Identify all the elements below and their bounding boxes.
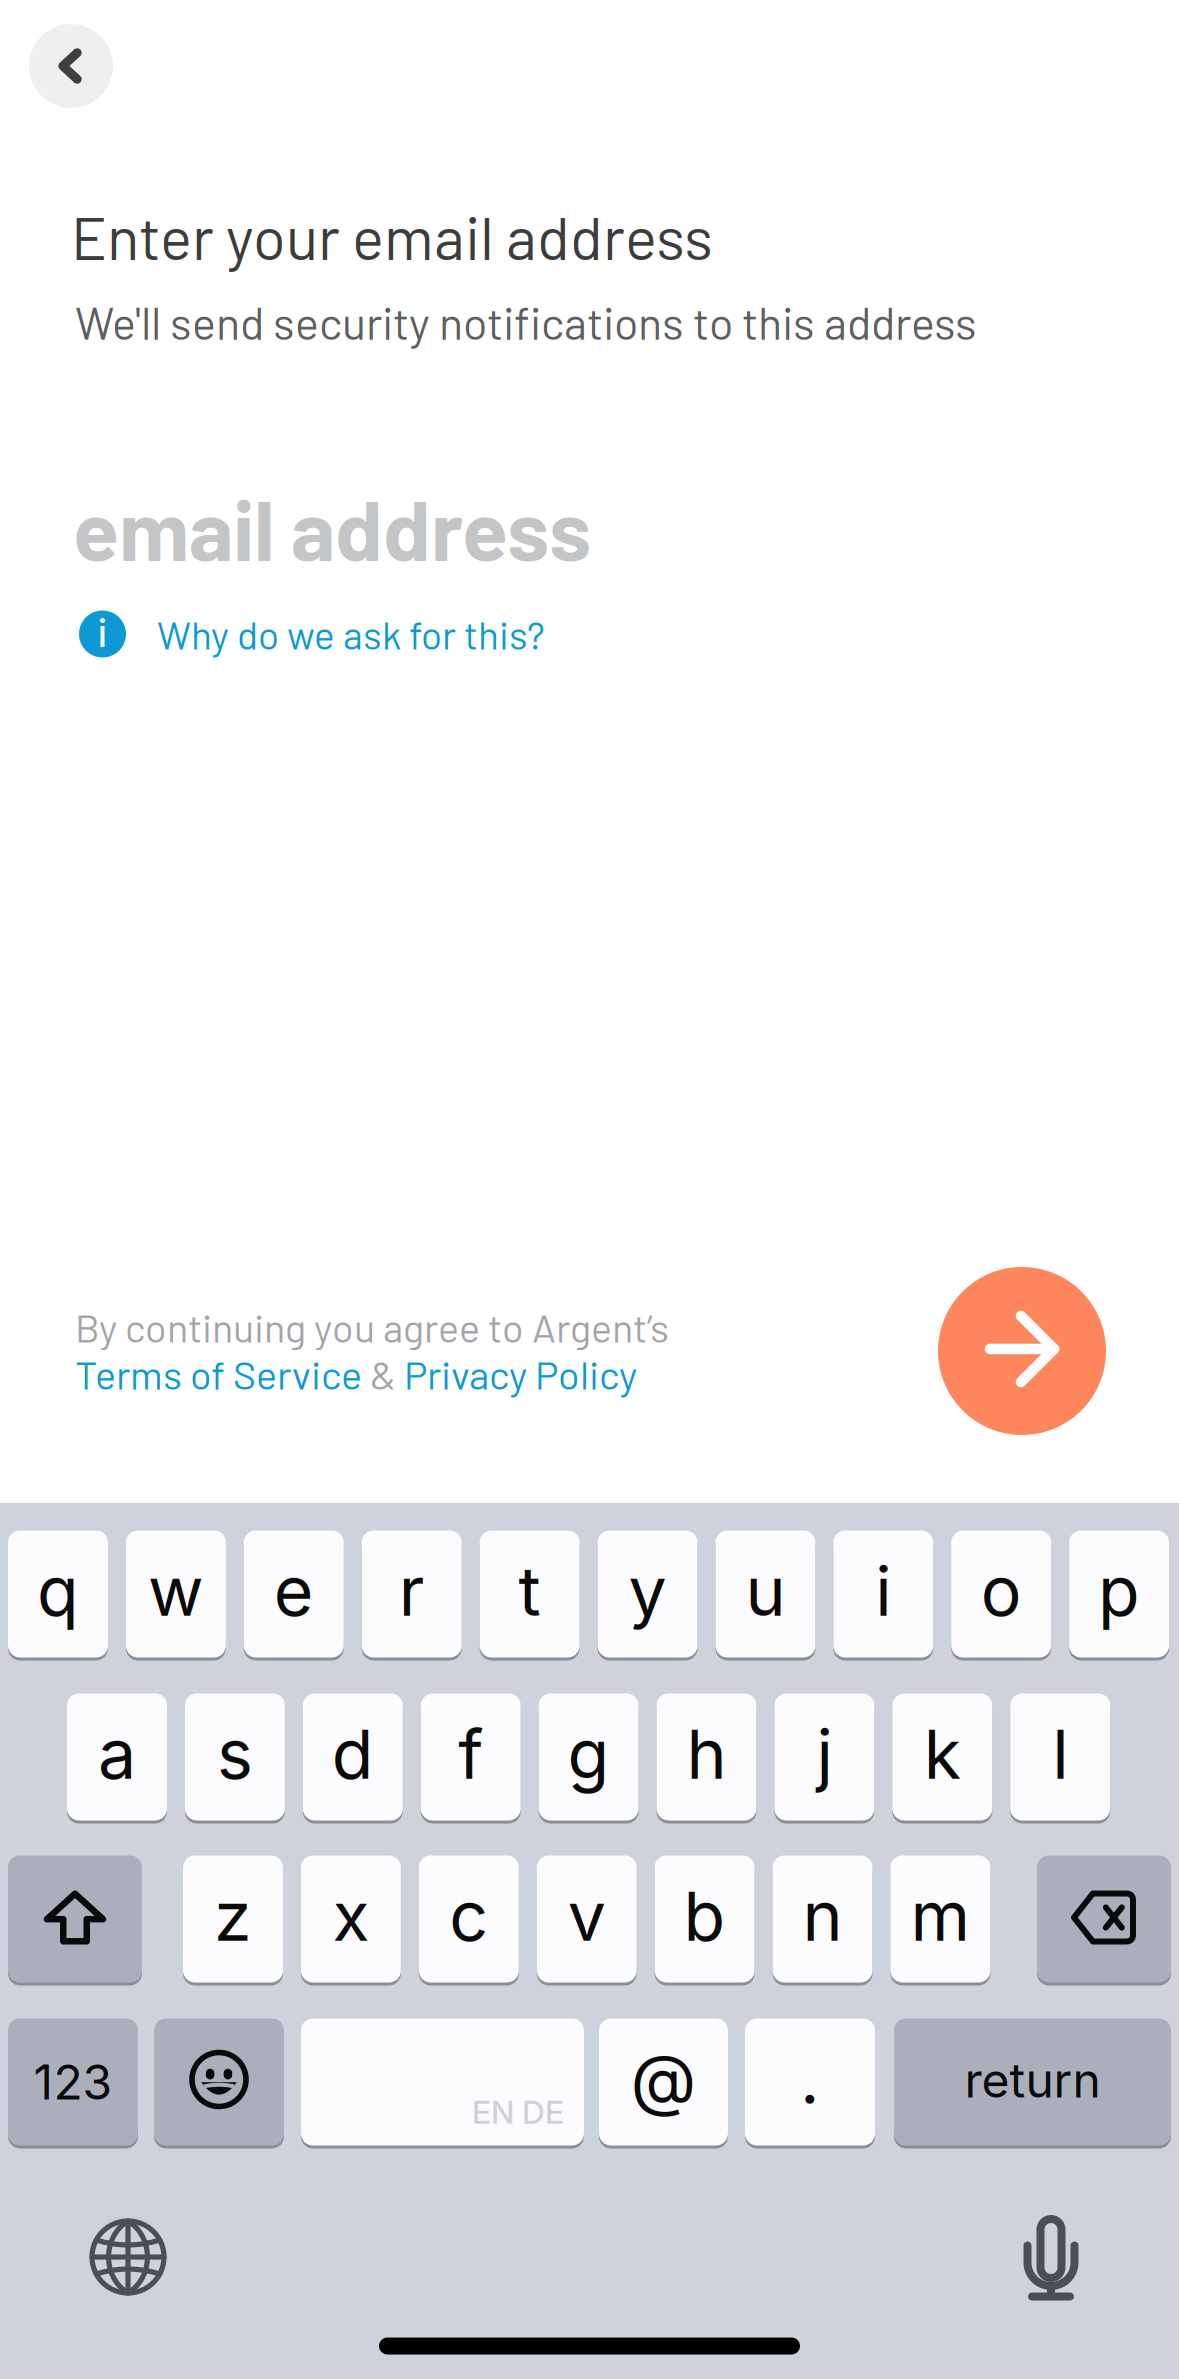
staticText: l — [1052, 1713, 1068, 1795]
staticText: s — [217, 1713, 253, 1795]
button[interactable]: z — [183, 1854, 283, 1984]
staticText: t — [519, 1550, 541, 1632]
button[interactable]: c — [419, 1854, 519, 1984]
button[interactable]: e — [244, 1529, 344, 1659]
button[interactable]: Terms of Service — [75, 1350, 362, 1397]
button[interactable]: i — [833, 1529, 933, 1659]
staticText: k — [924, 1713, 961, 1795]
button[interactable]: p — [1069, 1529, 1169, 1659]
staticText: d — [332, 1713, 374, 1795]
staticText: i — [875, 1550, 891, 1632]
button[interactable]: n — [772, 1854, 872, 1984]
button[interactable]: v — [537, 1854, 637, 1984]
button[interactable]: r — [362, 1529, 462, 1659]
staticText: a — [98, 1713, 136, 1795]
staticText: h — [686, 1713, 726, 1795]
button[interactable]: u — [715, 1529, 815, 1659]
button[interactable]: f — [421, 1692, 521, 1822]
button[interactable]: . — [745, 2017, 875, 2147]
staticText: By continuing you agree to Argent’s — [75, 1303, 669, 1350]
button[interactable]: @ — [599, 2017, 728, 2147]
staticText: Enter your email address — [71, 200, 713, 272]
staticText: return — [964, 2051, 1100, 2109]
button[interactable]: o — [951, 1529, 1051, 1659]
button[interactable]: Dictation — [987, 2192, 1115, 2312]
staticText: & — [362, 1350, 404, 1397]
staticText: u — [745, 1550, 785, 1632]
button[interactable]: h — [656, 1692, 756, 1822]
staticText: 123 — [33, 2053, 112, 2111]
staticText: . — [800, 2038, 820, 2120]
staticText: y — [628, 1550, 666, 1632]
button[interactable]: Delete — [1037, 1854, 1171, 1984]
button[interactable]: i — [79, 605, 559, 663]
staticText: Privacy Policy — [404, 1350, 637, 1397]
staticText: EN DE — [472, 2093, 564, 2131]
staticText: q — [37, 1550, 79, 1632]
button[interactable]: y — [597, 1529, 697, 1659]
staticText: @ — [630, 2038, 696, 2120]
button[interactable]: Continue — [938, 1267, 1106, 1435]
button[interactable]: k — [892, 1692, 992, 1822]
staticText: j — [816, 1713, 832, 1795]
staticText: e — [274, 1550, 314, 1632]
staticText: z — [214, 1875, 252, 1957]
staticText: m — [910, 1875, 970, 1957]
staticText: p — [1098, 1550, 1140, 1632]
button[interactable]: d — [303, 1692, 403, 1822]
staticText: f — [458, 1713, 483, 1795]
button[interactable]: Next keyboard — [64, 2197, 192, 2317]
button[interactable]: x — [301, 1854, 401, 1984]
staticText: i — [98, 610, 107, 656]
staticText: email address — [73, 477, 591, 578]
button[interactable]: s — [185, 1692, 285, 1822]
staticText: We'll send security notifications to thi… — [75, 295, 977, 349]
staticText: r — [399, 1550, 425, 1632]
staticText: Why do we ask for this? — [157, 611, 545, 657]
staticText: o — [981, 1550, 1022, 1632]
button[interactable]: Numbers — [8, 2017, 138, 2147]
staticText: b — [684, 1875, 726, 1957]
staticText: x — [332, 1875, 369, 1957]
button[interactable]: l — [1010, 1692, 1110, 1822]
staticText: g — [568, 1713, 610, 1795]
button[interactable]: j — [774, 1692, 874, 1822]
button[interactable]: m — [890, 1854, 990, 1984]
button[interactable]: Privacy Policy — [404, 1350, 637, 1397]
button[interactable]: q — [8, 1529, 108, 1659]
button[interactable]: a — [67, 1692, 167, 1822]
button[interactable]: Back — [29, 24, 113, 108]
button[interactable]: b — [655, 1854, 755, 1984]
button[interactable]: Emoji — [154, 2017, 284, 2147]
staticText: n — [802, 1875, 842, 1957]
button[interactable]: return — [894, 2017, 1171, 2147]
button[interactable]: g — [539, 1692, 639, 1822]
staticText: c — [449, 1875, 488, 1957]
button[interactable]: space — [301, 2017, 584, 2147]
button[interactable]: Shift — [8, 1854, 142, 1984]
staticText: Terms of Service — [75, 1350, 362, 1397]
staticText: v — [568, 1875, 606, 1957]
button[interactable]: t — [480, 1529, 580, 1659]
staticText: w — [148, 1550, 204, 1632]
button[interactable]: w — [126, 1529, 226, 1659]
